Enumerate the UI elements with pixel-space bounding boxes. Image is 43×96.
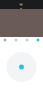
staticText: New Post [19, 0, 23, 22]
